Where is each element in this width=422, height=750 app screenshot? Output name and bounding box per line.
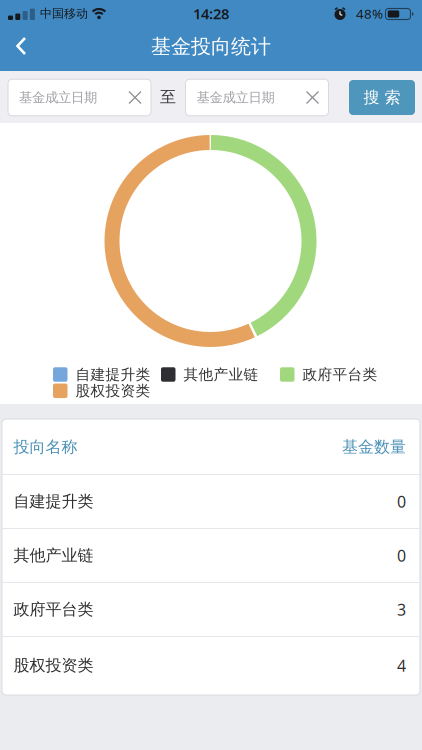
button[interactable]: 其他产业链 (161, 365, 263, 383)
staticText: 自建提升类 (75, 365, 150, 383)
staticText: 基金成立日期 (196, 89, 274, 106)
staticText: 基金成立日期 (19, 89, 97, 106)
staticText: 4 (397, 655, 406, 676)
staticText: 其他产业链 (13, 546, 93, 565)
staticText: 48% (356, 5, 383, 22)
staticText: 至 (160, 87, 176, 107)
button[interactable]: 返回 (0, 27, 44, 65)
staticText: 0 (397, 545, 406, 566)
button[interactable]: 搜 索 (349, 80, 415, 115)
staticText: 3 (397, 599, 406, 620)
button[interactable]: 自建提升类 (53, 365, 155, 383)
button[interactable]: 股权投资类 (53, 382, 155, 400)
staticText: 政府平台类 (13, 600, 93, 619)
staticText: 14:28 (193, 4, 229, 23)
button[interactable]: 清除日期 (122, 84, 148, 110)
button[interactable]: 选择基金成立日期 (185, 79, 328, 116)
staticText: 投向名称 (13, 437, 77, 457)
staticText: 基金投向统计 (151, 34, 271, 59)
button[interactable]: 清除日期 (299, 84, 325, 110)
staticText: 基金数量 (342, 437, 406, 457)
staticText: 0 (397, 491, 406, 512)
staticText: 中国移动 (40, 6, 88, 21)
button[interactable]: 政府平台类 (280, 365, 382, 383)
staticText: 股权投资类 (13, 656, 93, 675)
staticText: 政府平台类 (302, 365, 377, 383)
button[interactable]: 选择基金成立日期 (8, 79, 151, 116)
staticText: 自建提升类 (13, 492, 93, 511)
staticText: 股权投资类 (75, 382, 150, 400)
staticText: 其他产业链 (183, 365, 258, 383)
staticText: 搜 索 (363, 88, 400, 107)
